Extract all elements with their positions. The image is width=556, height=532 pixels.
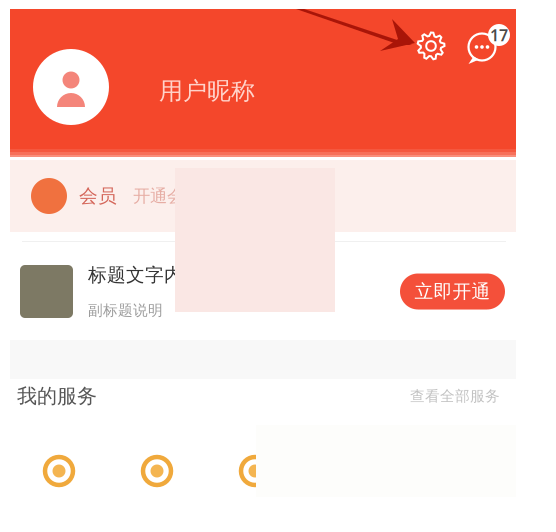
staticText: 标题文字内容 xyxy=(88,263,202,286)
button[interactable]: Service xyxy=(206,443,304,499)
staticText: 我的服务 xyxy=(17,384,97,408)
button[interactable]: Settings xyxy=(416,31,446,61)
button[interactable]: 标题文字内容 xyxy=(20,265,505,318)
button[interactable]: Service xyxy=(108,443,206,499)
staticText: 会员 xyxy=(79,184,117,207)
staticText: 开通会员享特权 xyxy=(133,185,252,207)
staticText: 用户昵称 xyxy=(159,76,255,106)
staticText: 副标题说明 xyxy=(88,301,163,319)
button[interactable]: 会员 xyxy=(10,160,516,232)
staticText: 17 xyxy=(490,24,508,46)
button[interactable]: Service xyxy=(10,443,108,499)
button[interactable]: 用户昵称 xyxy=(159,78,259,104)
staticText: 查看全部服务 xyxy=(410,387,500,405)
button[interactable]: Messages xyxy=(467,23,513,67)
button[interactable]: 我的服务 xyxy=(17,384,137,408)
staticText: 立即开通 xyxy=(414,280,490,303)
button[interactable]: 查看全部服务 xyxy=(390,386,500,406)
button[interactable]: Profile photo xyxy=(33,49,109,125)
